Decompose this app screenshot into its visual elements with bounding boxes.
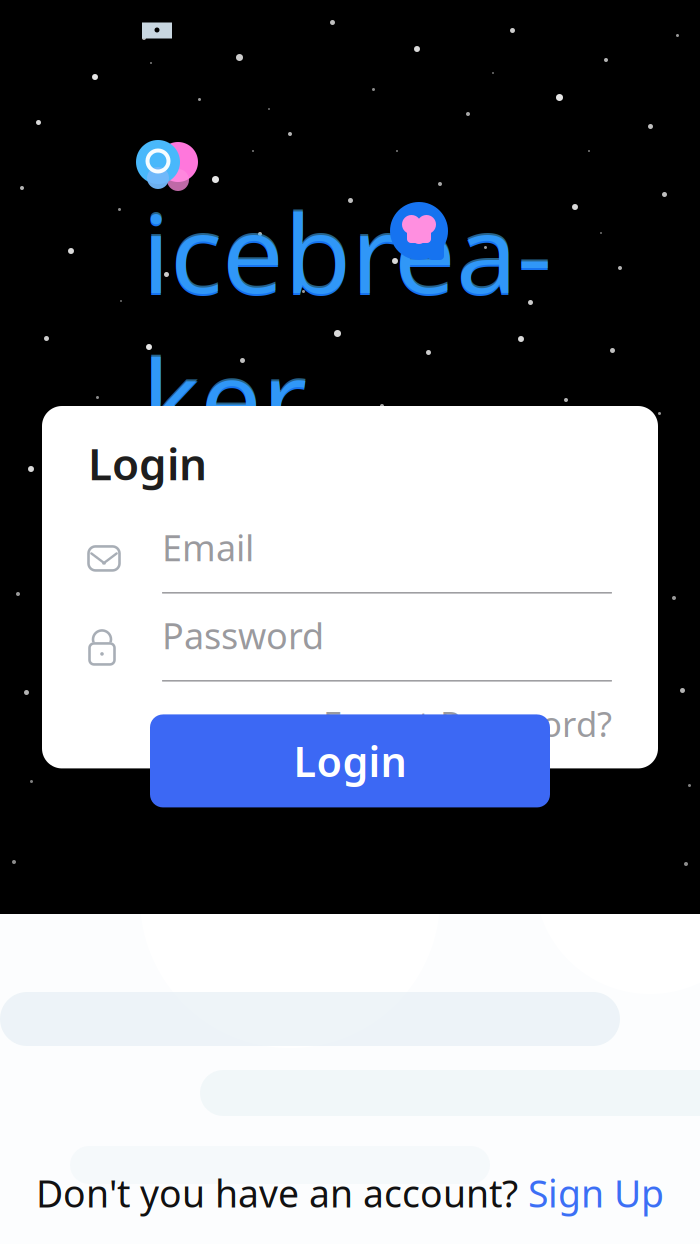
button[interactable]: Don't you have an account? [36, 1168, 664, 1218]
staticText: Don't you have an account? [36, 1168, 528, 1218]
staticText: icebreaker [142, 178, 552, 468]
staticText: Email [162, 523, 254, 571]
button[interactable]: Login [150, 714, 550, 807]
staticText: Login [88, 434, 207, 492]
staticText: 12:25 PM [328, 2, 463, 42]
staticText: Sign Up [528, 1168, 664, 1218]
staticText: Forgot Password? [323, 700, 612, 746]
staticText: Login [293, 733, 406, 788]
staticText: Password [162, 611, 324, 659]
button[interactable]: Forgot Password? [88, 704, 612, 742]
staticText: icebreaker [142, 180, 552, 470]
